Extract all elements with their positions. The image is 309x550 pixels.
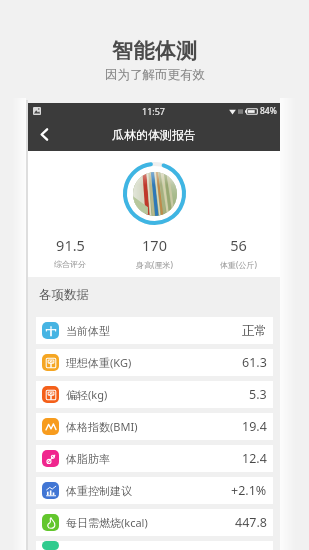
staticText: 61.3 <box>242 354 267 371</box>
staticText: 84% <box>260 105 277 117</box>
staticText: 5.3 <box>249 386 267 403</box>
button[interactable]: 当前体型 <box>36 317 273 344</box>
staticText: 当前体型 <box>66 324 110 338</box>
button[interactable]: 每日需燃烧(kcal) <box>36 509 273 536</box>
staticText: 体脂肪率 <box>66 452 110 466</box>
button[interactable]: 体重控制建议 <box>36 477 273 504</box>
staticText: 体重(公斤) <box>220 259 257 270</box>
staticText: 11:57 <box>142 105 166 117</box>
staticText: 正常 <box>242 323 267 339</box>
staticText: 91.5 <box>56 235 85 255</box>
staticText: 综合评分 <box>54 259 86 269</box>
staticText: 理想体重(KG) <box>66 355 132 370</box>
staticText: 身高(厘米) <box>136 259 173 270</box>
staticText: 170 <box>142 235 167 255</box>
button[interactable]: 体格指数(BMI) <box>36 413 273 440</box>
staticText: 体格指数(BMI) <box>66 419 138 434</box>
staticText: 19.4 <box>242 418 267 435</box>
staticText: 瓜林的体测报告 <box>112 127 196 142</box>
staticText: 每日需燃烧(kcal) <box>66 515 148 530</box>
button[interactable]: 偏轻(kg) <box>36 381 273 408</box>
staticText: 体重控制建议 <box>66 484 132 498</box>
staticText: +2.1% <box>231 482 267 499</box>
staticText: 因为了解而更有效 <box>105 67 205 83</box>
staticText: 各项数据 <box>39 287 89 303</box>
staticText: 447.8 <box>235 514 267 531</box>
button[interactable]: 理想体重(KG) <box>36 349 273 376</box>
button[interactable]: 体脂肪率 <box>36 445 273 472</box>
button[interactable]: Back <box>28 118 61 151</box>
staticText: 56 <box>230 235 247 255</box>
staticText: 智能体测 <box>112 38 198 64</box>
staticText: 12.4 <box>242 450 267 467</box>
staticText: 偏轻(kg) <box>66 387 108 402</box>
button[interactable] <box>36 541 273 550</box>
